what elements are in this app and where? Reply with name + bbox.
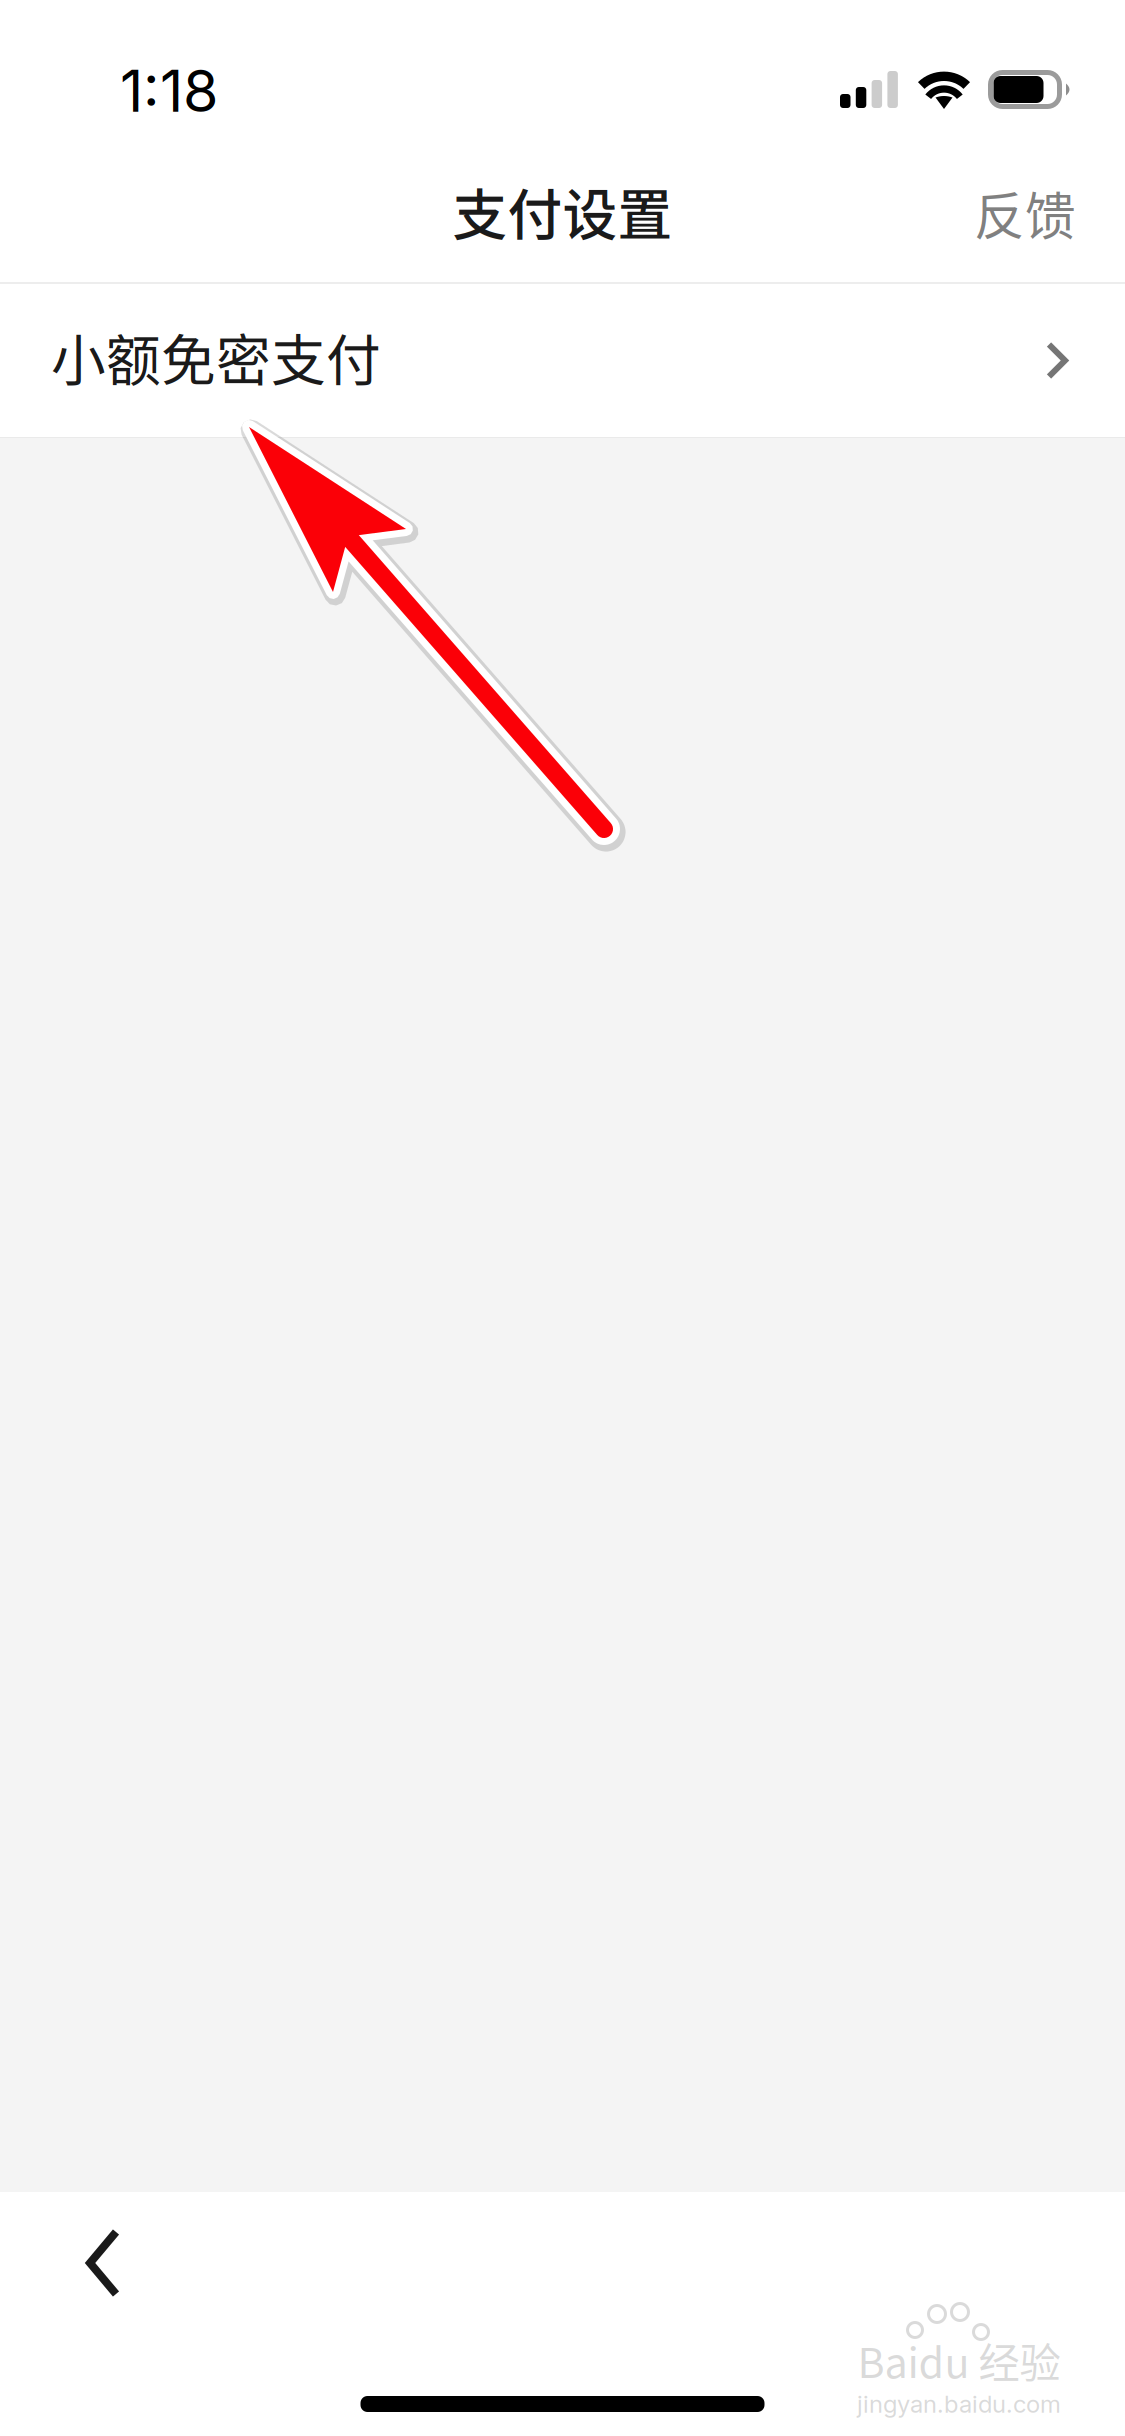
staticText: Baidu 经验 (857, 2330, 1060, 2390)
button[interactable]: 反馈 (950, 144, 1100, 270)
staticText: 反馈 (974, 176, 1076, 250)
staticText: 1:18 (120, 56, 218, 126)
staticText: jingyan.baidu.com (857, 2389, 1061, 2418)
staticText: 小额免密支付 (51, 317, 381, 396)
staticText: 支付设置 (452, 171, 672, 251)
button[interactable]: 小额免密支付 (0, 284, 1125, 437)
button[interactable]: Back (0, 2249, 164, 2379)
